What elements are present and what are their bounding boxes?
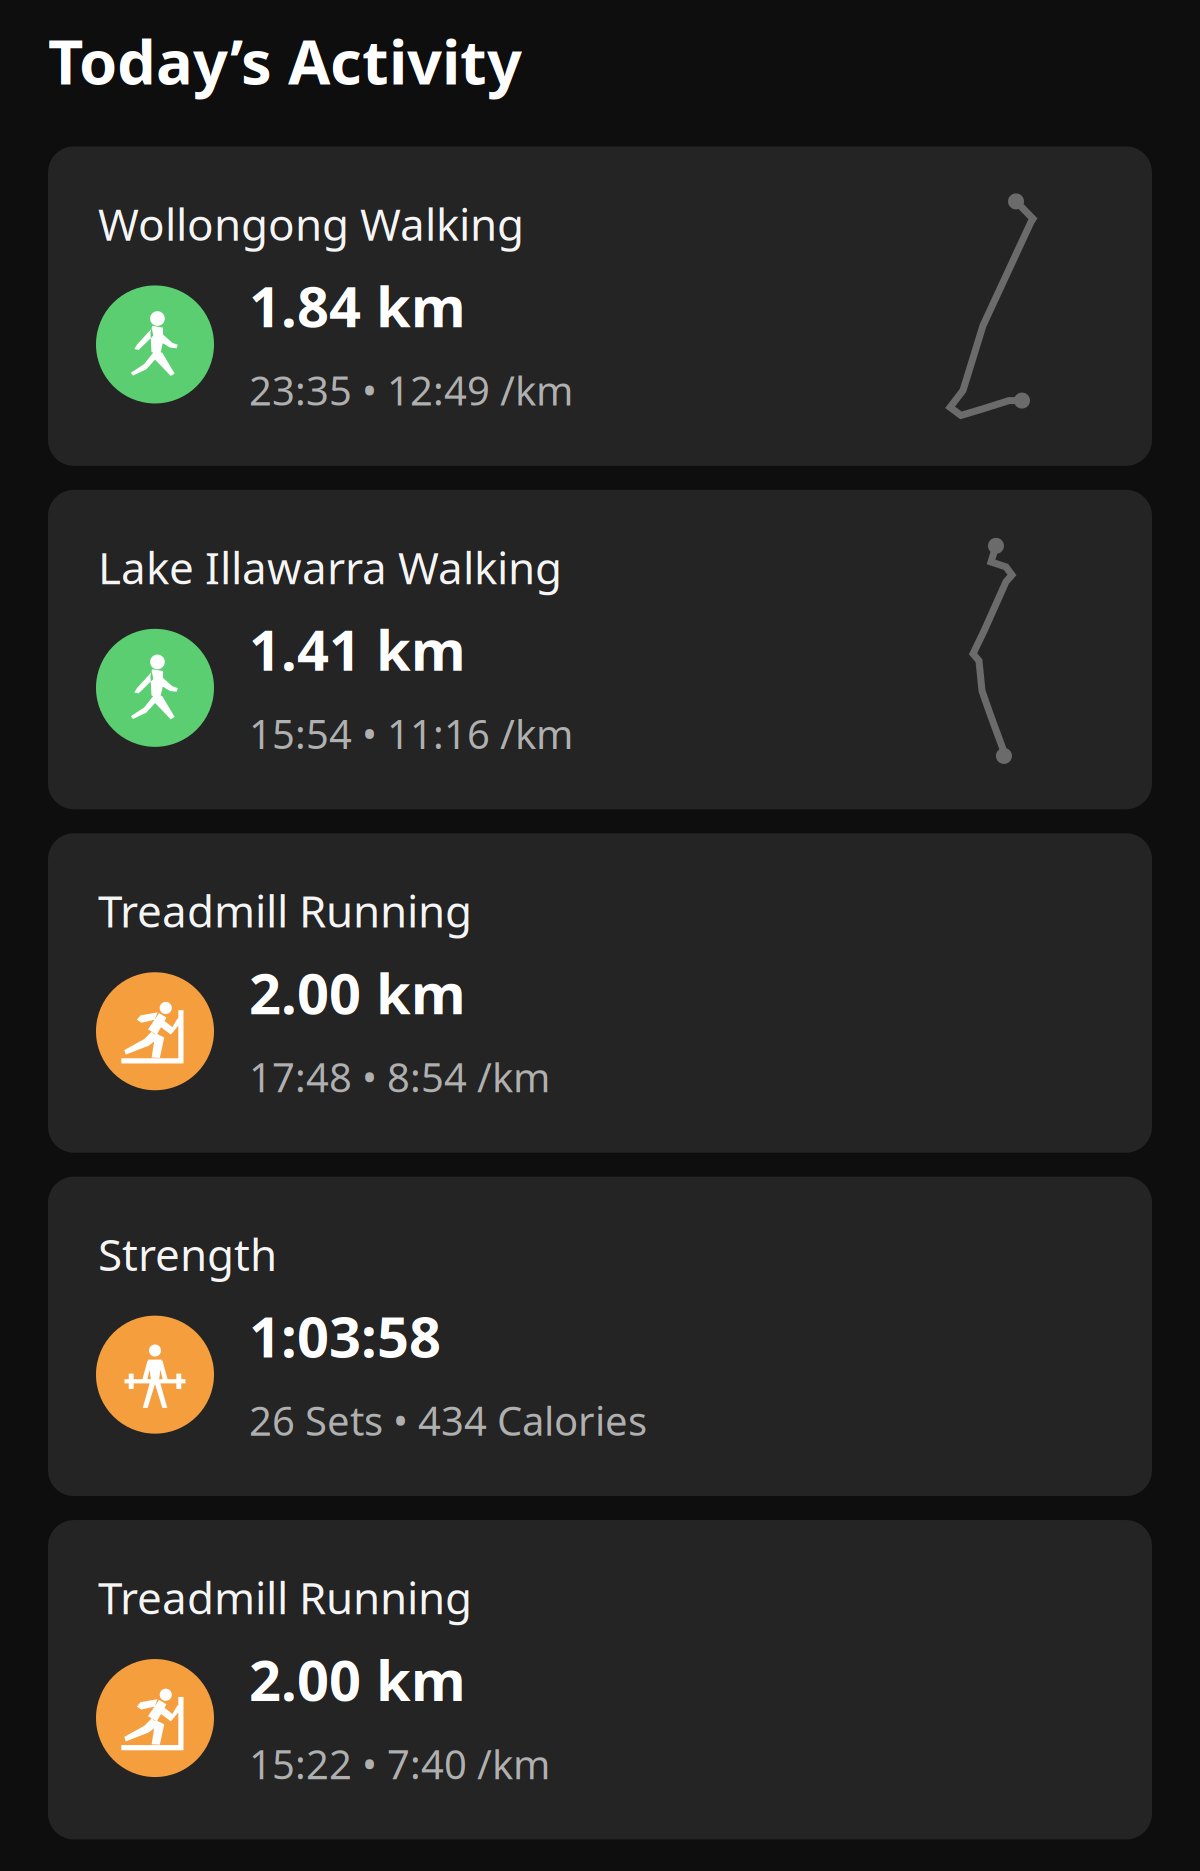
staticText: Today’s Activity [48, 20, 522, 101]
staticText: 15:22 • 7:40 /km [249, 1737, 550, 1790]
staticText: 23:35 • 12:49 /km [249, 363, 573, 416]
button[interactable]: Treadmill Running [48, 1520, 1152, 1839]
staticText: Lake Illawarra Walking [98, 538, 562, 596]
staticText: 26 Sets • 434 Calories [249, 1394, 647, 1447]
staticText: Treadmill Running [98, 1568, 472, 1626]
staticText: 2.00 km [249, 955, 466, 1030]
button[interactable]: Treadmill Running [48, 833, 1152, 1153]
button[interactable]: Lake Illawarra Walking [48, 490, 1152, 809]
staticText: 17:48 • 8:54 /km [249, 1050, 550, 1103]
staticText: 2.00 km [249, 1642, 466, 1716]
button[interactable]: Wollongong Walking [48, 146, 1152, 466]
staticText: 1.41 km [249, 612, 466, 686]
staticText: Treadmill Running [98, 881, 472, 940]
staticText: Wollongong Walking [98, 194, 524, 253]
staticText: 1:03:58 [249, 1299, 441, 1373]
staticText: 1.84 km [249, 268, 466, 343]
staticText: Strength [98, 1225, 277, 1283]
staticText: 15:54 • 11:16 /km [249, 707, 573, 760]
button[interactable]: Strength [48, 1177, 1152, 1496]
